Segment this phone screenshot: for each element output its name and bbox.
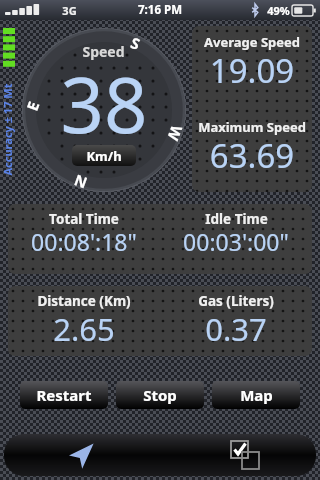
staticText: 49% [267,3,290,18]
staticText: 63.69 [192,133,312,178]
staticText: 00:03':00" [160,226,312,257]
button[interactable]: Km/h [72,145,136,166]
button[interactable]: Options [230,440,260,470]
staticText: Gas (Liters) [198,292,274,310]
staticText: 19.09 [192,48,312,93]
staticText: E [22,98,43,114]
button[interactable]: Restart [20,381,108,409]
staticText: Total Time [49,210,119,228]
staticText: Idle Time [205,210,268,228]
staticText: Maximum Speed [198,118,306,136]
staticText: Km/h [86,147,122,165]
staticText: 38 [36,52,172,156]
staticText: N [71,170,90,194]
staticText: 0.37 [160,308,312,350]
staticText: 7:16 PM [138,2,182,18]
staticText: Distance (Km) [37,292,131,310]
staticText: Accuracy ± 17 Mt [0,83,14,175]
staticText: W [163,122,187,143]
staticText: 2.65 [8,308,160,350]
button[interactable]: Stop [116,381,204,409]
staticText: Map [240,385,273,405]
staticText: 3G [62,3,77,18]
button[interactable]: Navigate [66,440,96,470]
staticText: Stop [143,385,177,405]
button[interactable]: Map [212,381,300,409]
staticText: Restart [36,385,92,405]
staticText: S [128,32,143,54]
staticText: Speed [82,42,125,61]
staticText: 00:08':18" [8,226,160,257]
staticText: Average Speed [204,33,300,51]
